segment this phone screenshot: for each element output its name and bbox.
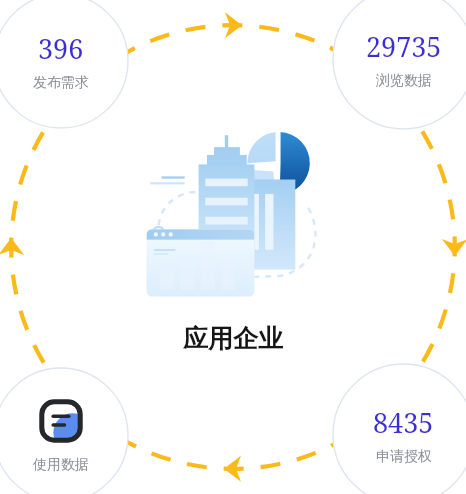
staticText: 396	[38, 30, 84, 67]
button[interactable]	[140, 124, 326, 306]
button[interactable]: 应用企业	[183, 323, 283, 354]
button[interactable]: 使用数据	[37, 397, 85, 445]
staticText: 发布需求	[33, 74, 89, 92]
staticText: 应用企业	[183, 323, 283, 354]
staticText: 申请授权	[376, 448, 432, 466]
button[interactable]: 29735	[332, 0, 466, 130]
button[interactable]: 8435	[332, 363, 466, 494]
staticText: 29735	[366, 28, 442, 65]
button[interactable]: 396	[0, 0, 129, 129]
staticText: 使用数据	[33, 456, 89, 474]
staticText: 浏览数据	[376, 72, 432, 90]
staticText: 8435	[373, 404, 434, 441]
button[interactable]: 使用数据	[0, 367, 129, 494]
